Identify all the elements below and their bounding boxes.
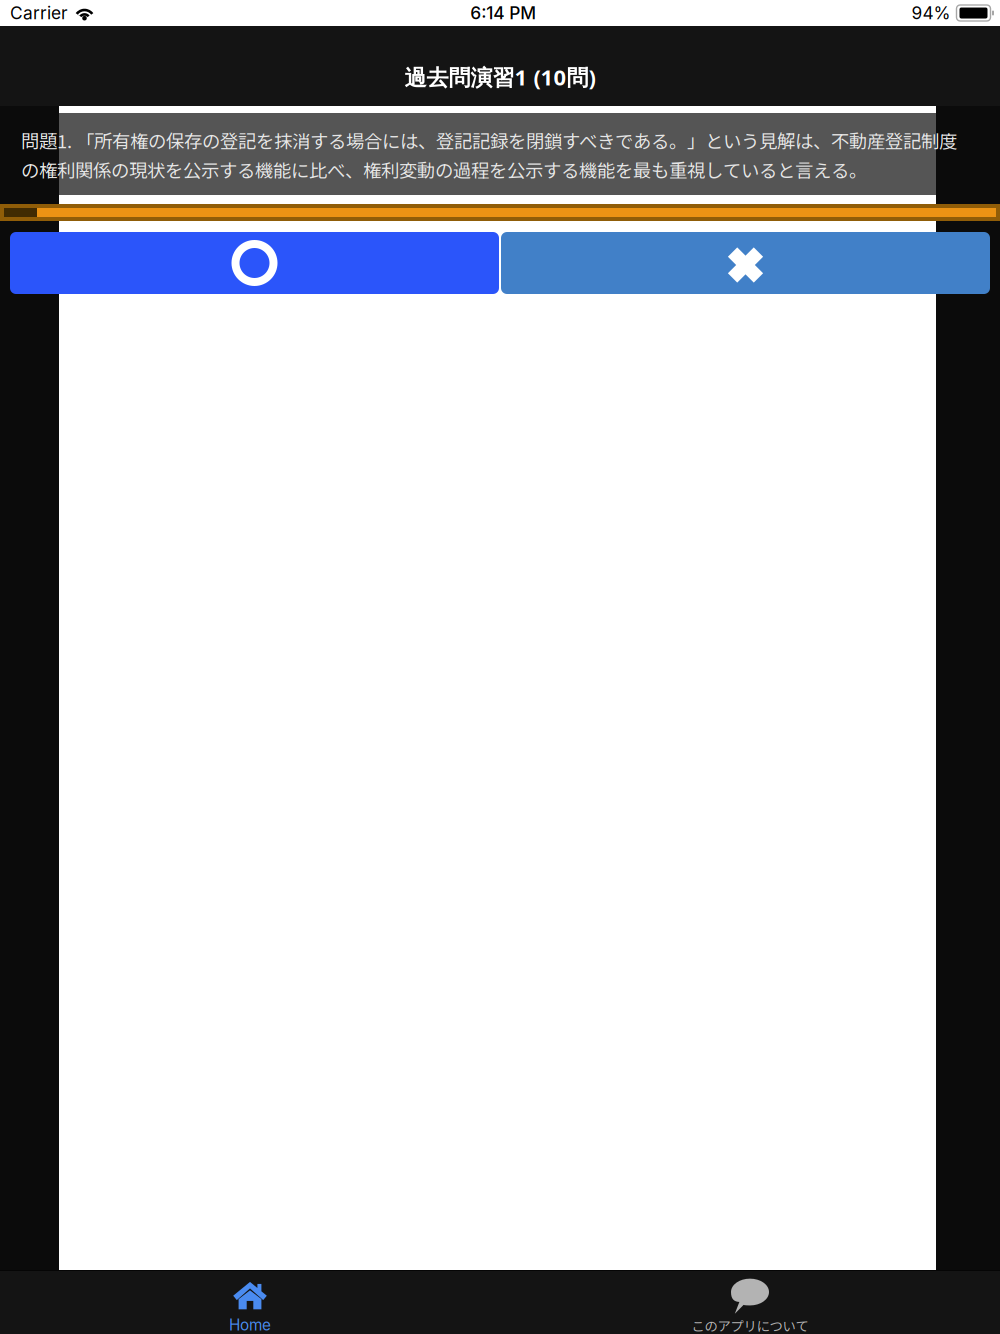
staticText: 94% <box>911 2 950 23</box>
staticText: 問題1. 「所有権の保存の登記を抹消する場合には、登記記録を閉鎖すべきである。」… <box>21 127 957 183</box>
button[interactable]: ○ 正しい <box>10 232 499 294</box>
button[interactable]: × 誤り <box>501 232 990 294</box>
staticText: Home <box>229 1316 271 1334</box>
button[interactable]: Home <box>170 1270 330 1334</box>
staticText: このアプリについて <box>691 1316 808 1334</box>
button[interactable]: このアプリについて <box>650 1270 850 1334</box>
staticText: Carrier <box>10 2 68 23</box>
staticText: 過去問演習1 (10問) <box>404 62 595 92</box>
staticText: 6:14 PM <box>470 2 536 23</box>
